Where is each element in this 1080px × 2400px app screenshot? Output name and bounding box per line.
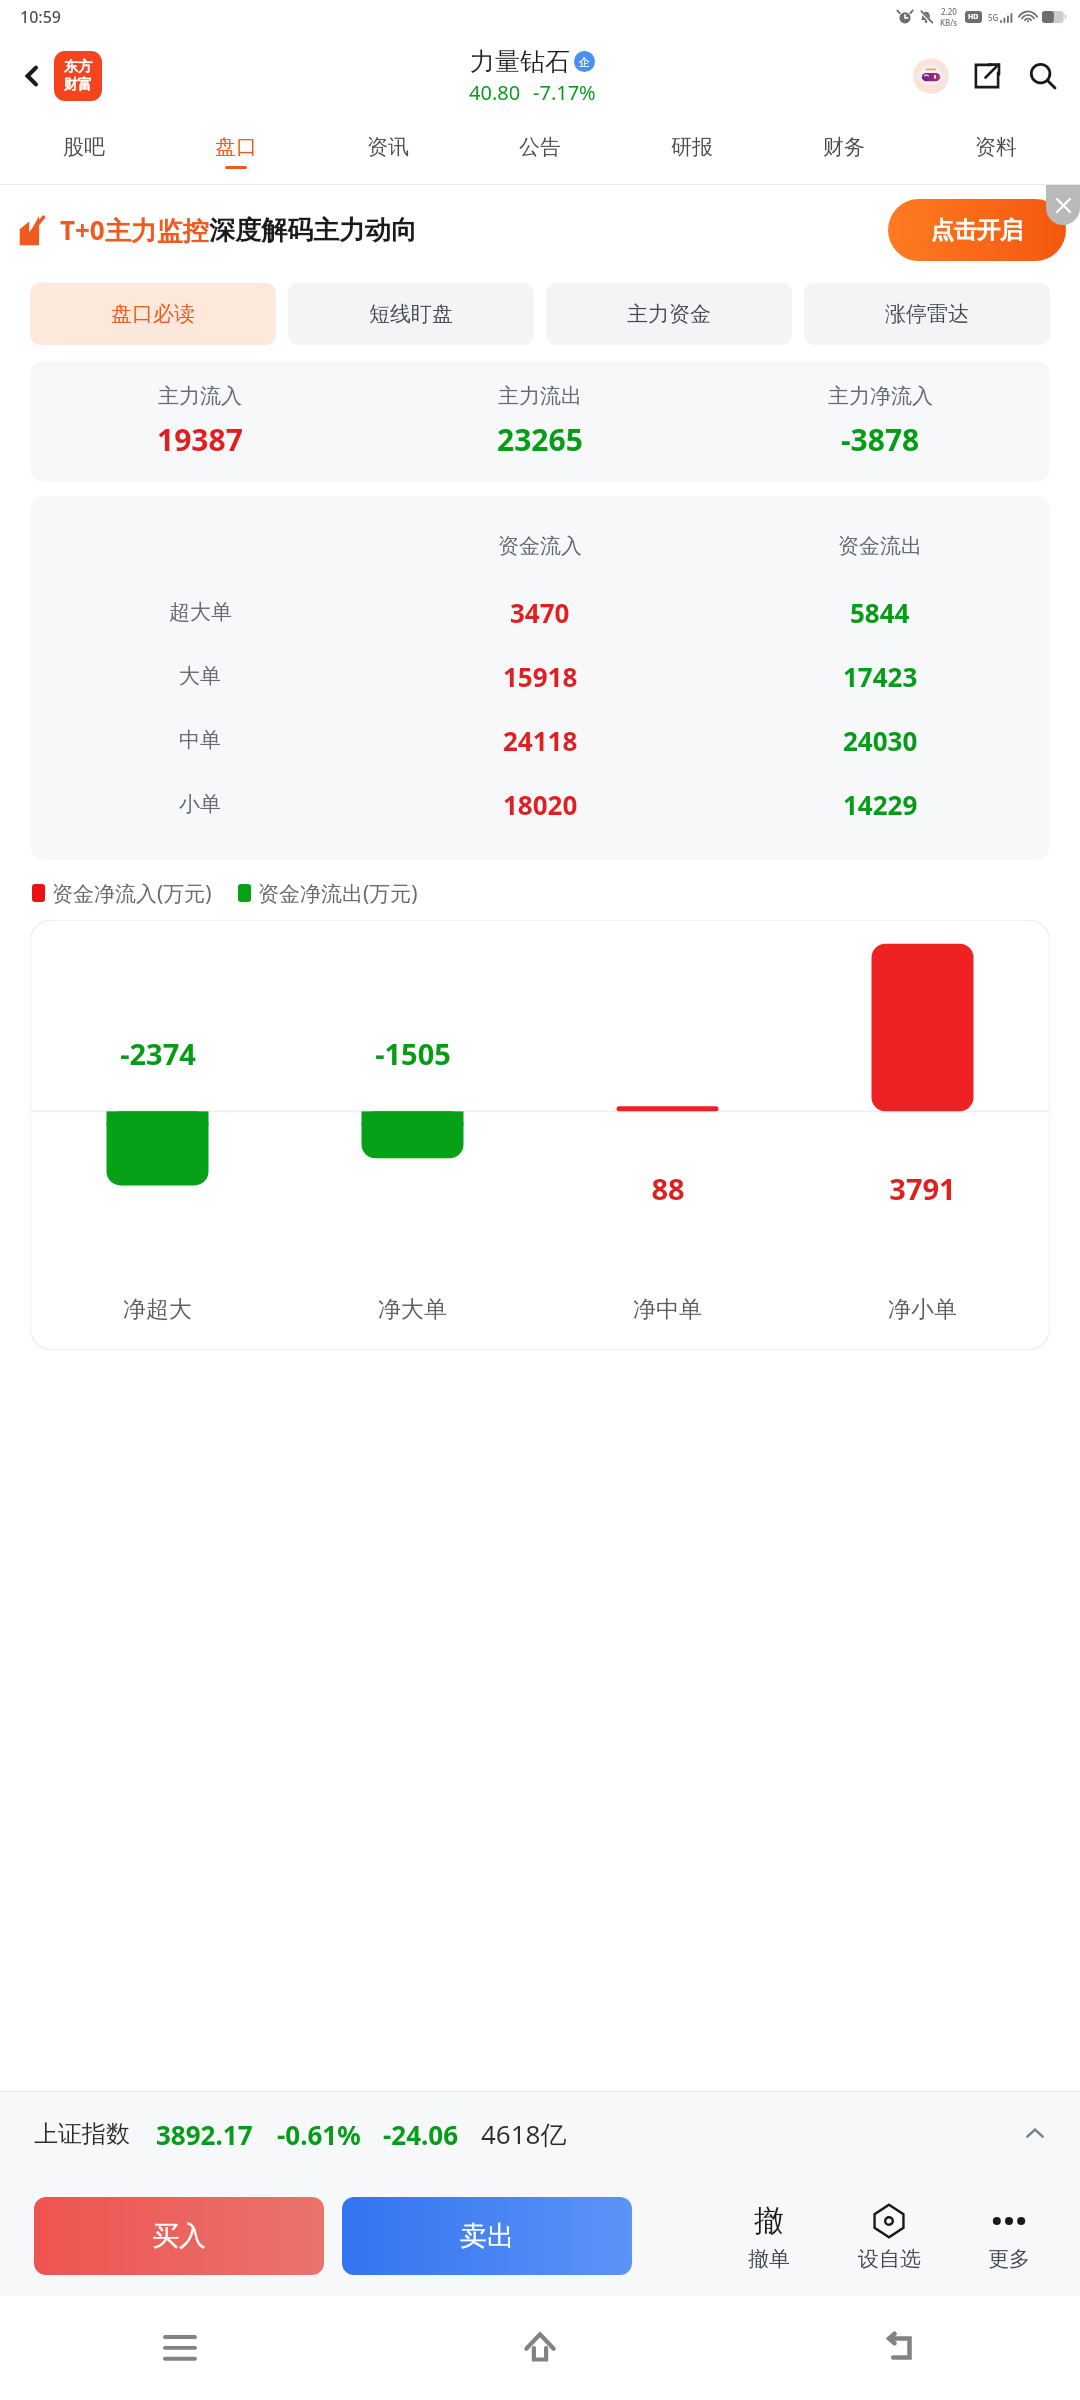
staticText: 3791 bbox=[889, 1169, 956, 1208]
staticText: 3470 bbox=[510, 595, 570, 630]
staticText: 2.20 bbox=[941, 6, 957, 17]
staticText: -2374 bbox=[120, 1034, 196, 1073]
staticText: 19387 bbox=[157, 419, 243, 460]
staticText: 净中单 bbox=[633, 1295, 702, 1324]
button[interactable]: 财务 bbox=[768, 118, 920, 184]
staticText: 主力资金 bbox=[627, 301, 711, 327]
staticText: 15918 bbox=[503, 659, 578, 694]
button[interactable]: 主力资金 bbox=[546, 283, 792, 345]
staticText: 东方 bbox=[64, 58, 92, 76]
staticText: 资金流出 bbox=[838, 533, 922, 559]
staticText: 净小单 bbox=[888, 1295, 957, 1324]
button[interactable]: 小单 bbox=[30, 772, 1050, 836]
staticText: 24118 bbox=[503, 723, 578, 758]
staticText: -7.17% bbox=[533, 79, 596, 106]
staticText: 财富 bbox=[64, 76, 92, 94]
button[interactable]: -2374 bbox=[30, 920, 1050, 1350]
staticText: 净大单 bbox=[378, 1295, 447, 1324]
button[interactable]: 超大单 bbox=[30, 580, 1050, 644]
button[interactable]: 资金流入 bbox=[30, 512, 1050, 844]
staticText: 10:59 bbox=[20, 6, 61, 28]
staticText: T+0主力监控 bbox=[60, 212, 209, 248]
staticText: -0.61% bbox=[277, 2117, 361, 2152]
staticText: 撤 bbox=[754, 2202, 784, 2240]
staticText: 4618亿 bbox=[481, 2116, 567, 2152]
staticText: HD bbox=[968, 12, 979, 22]
staticText: 5844 bbox=[850, 595, 910, 630]
staticText: 资金净流出(万元) bbox=[258, 879, 418, 908]
staticText: 88 bbox=[651, 1169, 685, 1208]
button[interactable]: 上证指数 bbox=[34, 2092, 1046, 2176]
staticText: 超大单 bbox=[169, 599, 232, 625]
staticText: 17423 bbox=[843, 659, 918, 694]
staticText: 小单 bbox=[179, 791, 221, 817]
staticText: 14229 bbox=[843, 787, 918, 822]
staticText: 短线盯盘 bbox=[369, 301, 453, 327]
staticText: 资金净流入(万元) bbox=[52, 879, 212, 908]
button[interactable]: 短线盯盘 bbox=[288, 283, 534, 345]
staticText: 卖出 bbox=[460, 2219, 514, 2253]
button[interactable]: 盘口必读 bbox=[30, 283, 276, 345]
button[interactable]: 大单 bbox=[30, 644, 1050, 708]
staticText: -24.06 bbox=[383, 2117, 459, 2152]
button[interactable]: Close banner bbox=[1046, 185, 1080, 225]
staticText: 40.80 bbox=[469, 79, 521, 106]
staticText: -3878 bbox=[841, 419, 920, 460]
staticText: 中单 bbox=[179, 727, 221, 753]
staticText: 研报 bbox=[671, 134, 713, 160]
button[interactable]: 公告 bbox=[464, 118, 616, 184]
staticText: 股吧 bbox=[63, 134, 105, 160]
staticText: 3892.17 bbox=[156, 2117, 253, 2152]
staticText: 资料 bbox=[975, 134, 1017, 160]
button[interactable]: Assistant bbox=[908, 53, 954, 99]
staticText: 主力流入 bbox=[158, 383, 242, 409]
staticText: 主力流出 bbox=[498, 383, 582, 409]
button[interactable]: Recents bbox=[0, 2296, 360, 2400]
button[interactable]: 买入 bbox=[34, 2197, 324, 2275]
button[interactable]: 点击开启 bbox=[888, 199, 1066, 261]
staticText: 净超大 bbox=[123, 1295, 192, 1324]
button[interactable]: 主力流入 bbox=[30, 383, 1050, 460]
staticText: 涨停雷达 bbox=[885, 301, 969, 327]
button[interactable]: 中单 bbox=[30, 708, 1050, 772]
staticText: 23265 bbox=[497, 419, 583, 460]
staticText: 大单 bbox=[179, 663, 221, 689]
button[interactable]: East Money bbox=[54, 51, 102, 101]
staticText: 力量钻石 bbox=[470, 46, 570, 77]
staticText: 盘口必读 bbox=[111, 301, 195, 327]
button[interactable]: 资讯 bbox=[312, 118, 464, 184]
button[interactable]: Share bbox=[964, 53, 1010, 99]
staticText: 上证指数 bbox=[34, 2119, 130, 2149]
button[interactable]: 设自选 bbox=[836, 2200, 942, 2272]
staticText: 资讯 bbox=[367, 134, 409, 160]
button[interactable]: 撤 bbox=[716, 2200, 822, 2272]
button[interactable]: 资料 bbox=[920, 118, 1072, 184]
staticText: 公告 bbox=[519, 134, 561, 160]
staticText: KB/s bbox=[940, 17, 958, 28]
staticText: 设自选 bbox=[858, 2246, 921, 2272]
staticText: 主力净流入 bbox=[828, 383, 933, 409]
staticText: 买入 bbox=[152, 2219, 206, 2253]
staticText: 企 bbox=[579, 55, 590, 69]
staticText: 深度解码主力动向 bbox=[209, 214, 417, 247]
staticText: 盘口 bbox=[215, 134, 257, 160]
button[interactable]: 更多 bbox=[956, 2200, 1062, 2272]
staticText: 24030 bbox=[843, 723, 918, 758]
button[interactable]: 股吧 bbox=[8, 118, 160, 184]
staticText: 5G bbox=[988, 12, 999, 23]
staticText: 点击开启 bbox=[931, 216, 1023, 245]
button[interactable]: T+0主力监控 bbox=[18, 185, 1066, 275]
staticText: 更多 bbox=[988, 2246, 1030, 2272]
button[interactable]: 卖出 bbox=[342, 2197, 632, 2275]
button[interactable]: 盘口 bbox=[160, 118, 312, 184]
button[interactable]: 涨停雷达 bbox=[804, 283, 1050, 345]
staticText: 撤单 bbox=[748, 2246, 790, 2272]
button[interactable]: Back bbox=[720, 2296, 1080, 2400]
button[interactable]: Back bbox=[10, 54, 54, 98]
staticText: -1505 bbox=[375, 1034, 451, 1073]
staticText: 18020 bbox=[503, 787, 578, 822]
button[interactable]: 研报 bbox=[616, 118, 768, 184]
button[interactable]: Search bbox=[1020, 53, 1066, 99]
staticText: 资金流入 bbox=[498, 533, 582, 559]
button[interactable]: Home bbox=[360, 2296, 720, 2400]
